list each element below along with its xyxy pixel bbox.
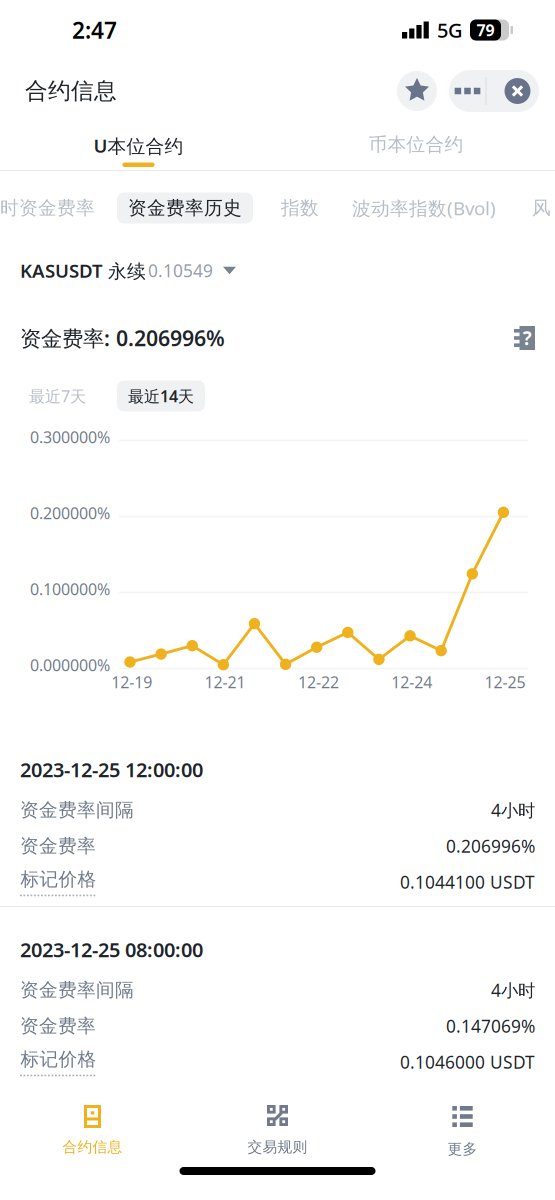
staticText: 0.200000% [30,502,110,524]
staticText: 标记价格 [20,868,96,891]
button[interactable]: U本位合约 [0,122,277,170]
staticText: 4小时 [491,978,535,1001]
button[interactable]: More options [449,70,485,112]
staticText: 最近7天 [29,385,86,407]
staticText: KASUSDT 永续 [20,258,146,283]
button[interactable]: 币本位合约 [277,122,555,170]
staticText: 交易规则 [247,1138,307,1156]
button[interactable]: KASUSDT 永续 [0,237,555,304]
button[interactable]: 最近14天 [117,380,205,411]
staticText: 指数 [281,196,319,219]
button[interactable]: Help [514,326,535,350]
staticText: 资金费率 [20,1014,96,1037]
staticText: 12-22 [298,671,339,693]
button[interactable]: 合约信息 [0,1090,185,1160]
button[interactable]: 指数 [281,196,319,219]
staticText: 0.1044100 USDT [400,870,535,893]
staticText: 0.147069% [446,1014,535,1037]
button[interactable]: 最近7天 [17,381,98,410]
staticText: 资金费率间隔 [20,798,134,821]
staticText: 币本位合约 [368,133,463,156]
button[interactable]: 波动率指数(Bvol) [352,196,496,220]
button[interactable]: Add to favorites [397,71,437,111]
staticText: 更多 [447,1140,477,1158]
button[interactable]: Close [486,70,538,112]
staticText: 0.1046000 USDT [400,1050,535,1073]
staticText: 2023-12-25 08:00:00 [20,936,203,963]
staticText: 波动率指数(Bvol) [352,196,496,220]
staticText: 12-19 [111,671,152,693]
staticText: 12-21 [204,671,245,693]
staticText: 0.100000% [30,578,110,600]
staticText: 2023-12-25 12:00:00 [20,756,203,783]
staticText: U本位合约 [93,133,183,158]
staticText: 资金费率: 0.206996% [20,324,225,352]
staticText: 5G [437,17,463,43]
staticText: 合约信息 [62,1138,122,1156]
staticText: 0.000000% [30,654,110,676]
staticText: 4小时 [491,798,535,821]
staticText: ? [523,326,532,350]
staticText: 最近14天 [128,385,194,407]
staticText: 标记价格 [20,1048,96,1071]
staticText: 79 [476,19,494,41]
staticText: 风 [532,196,551,219]
staticText: 资金费率历史 [128,196,242,219]
staticText: 资金费率 [20,834,96,857]
staticText: 资金费率间隔 [20,978,134,1001]
button[interactable]: 资金费率历史 [117,192,253,223]
staticText: 12-25 [485,671,526,693]
staticText: 0.206996% [446,834,535,857]
button[interactable]: 更多 [370,1090,555,1160]
staticText: 时资金费率 [0,196,95,219]
staticText: 0.10549 [148,259,213,282]
staticText: 2:47 [72,15,117,45]
staticText: 合约信息 [25,77,117,105]
staticText: 12-24 [391,671,432,693]
button[interactable]: 交易规则 [185,1090,370,1160]
staticText: 0.300000% [30,426,110,448]
